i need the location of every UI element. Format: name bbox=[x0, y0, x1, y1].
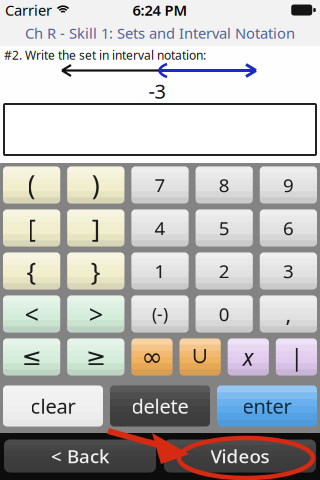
button[interactable]: , bbox=[260, 295, 317, 332]
button[interactable]: ∞ bbox=[131, 338, 172, 375]
button[interactable]: Videos bbox=[164, 439, 316, 472]
button[interactable]: > bbox=[67, 295, 124, 332]
button[interactable]: | bbox=[276, 338, 317, 375]
button[interactable]: 2 bbox=[196, 252, 253, 289]
staticText: x bbox=[243, 342, 254, 372]
staticText: ) bbox=[92, 167, 100, 203]
staticText: [ bbox=[28, 211, 36, 245]
button[interactable]: ) bbox=[67, 166, 124, 203]
staticText: 3 bbox=[283, 259, 294, 283]
button[interactable]: ( bbox=[3, 166, 60, 203]
staticText: ≤ bbox=[22, 343, 42, 371]
button[interactable]: } bbox=[67, 252, 124, 289]
staticText: ] bbox=[92, 211, 100, 245]
button[interactable]: 9 bbox=[260, 166, 317, 203]
button[interactable]: ≥ bbox=[67, 338, 124, 375]
button[interactable]: < bbox=[3, 295, 60, 332]
staticText: Videos bbox=[210, 444, 269, 468]
button[interactable]: 6 bbox=[260, 209, 317, 246]
staticText: < bbox=[25, 297, 39, 331]
button[interactable]: Answer entry field bbox=[3, 103, 317, 156]
button[interactable]: 0 bbox=[196, 295, 253, 332]
staticText: ∞ bbox=[141, 343, 162, 371]
staticText: (-) bbox=[152, 302, 168, 325]
button[interactable]: delete bbox=[110, 385, 210, 426]
staticText: 1 bbox=[154, 259, 165, 283]
staticText: , bbox=[285, 300, 291, 328]
staticText: 6 bbox=[283, 216, 294, 240]
staticText: 5 bbox=[219, 216, 230, 240]
staticText: enter bbox=[242, 393, 291, 419]
staticText: -3 bbox=[148, 78, 165, 104]
staticText: > bbox=[89, 297, 103, 331]
button[interactable]: 7 bbox=[131, 166, 189, 203]
button[interactable]: Union bbox=[180, 338, 221, 375]
button[interactable]: [ bbox=[3, 209, 60, 246]
button[interactable]: 5 bbox=[196, 209, 253, 246]
staticText: 6:24 PM bbox=[132, 0, 187, 20]
staticText: < Back bbox=[51, 444, 109, 468]
staticText: 4 bbox=[154, 216, 165, 240]
button[interactable]: 8 bbox=[196, 166, 253, 203]
staticText: Carrier bbox=[5, 0, 52, 20]
button[interactable]: { bbox=[3, 252, 60, 289]
button[interactable]: x bbox=[228, 338, 269, 375]
button[interactable]: 4 bbox=[131, 209, 189, 246]
staticText: 8 bbox=[219, 173, 230, 197]
staticText: ≥ bbox=[86, 343, 106, 371]
button[interactable]: 3 bbox=[260, 252, 317, 289]
staticText: ( bbox=[28, 167, 36, 203]
staticText: 9 bbox=[283, 173, 294, 197]
staticText: 7 bbox=[154, 173, 165, 197]
button[interactable]: (-) bbox=[131, 295, 189, 332]
button[interactable]: enter bbox=[217, 385, 317, 426]
staticText: 2 bbox=[219, 259, 230, 283]
button[interactable]: ] bbox=[67, 209, 124, 246]
staticText: delete bbox=[131, 393, 188, 419]
staticText: | bbox=[290, 342, 302, 372]
staticText: #2. Write the set in interval notation: bbox=[4, 47, 206, 63]
staticText: 0 bbox=[219, 302, 230, 326]
button[interactable]: ≤ bbox=[3, 338, 60, 375]
staticText: } bbox=[91, 254, 101, 288]
button[interactable]: 1 bbox=[131, 252, 189, 289]
staticText: { bbox=[27, 254, 37, 288]
button[interactable]: < Back bbox=[4, 439, 156, 472]
staticText: Ch R - Skill 1: Sets and Interval Notati… bbox=[25, 23, 295, 43]
staticText: clear bbox=[30, 393, 75, 419]
button[interactable]: clear bbox=[3, 385, 103, 426]
